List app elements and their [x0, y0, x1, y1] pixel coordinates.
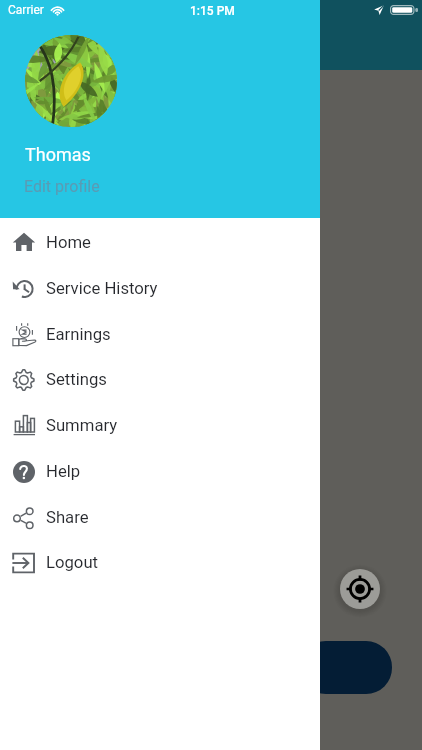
staticText: Share [46, 508, 89, 528]
button[interactable]: Help [0, 449, 320, 495]
button[interactable]: Home [0, 220, 320, 266]
staticText: Logout [46, 553, 99, 573]
staticText: Home [46, 233, 91, 253]
button[interactable]: My location [340, 569, 380, 609]
staticText: Help [46, 462, 81, 482]
staticText: 1:15 PM [190, 4, 235, 18]
button[interactable]: Summary [0, 403, 320, 449]
button[interactable]: Go online [300, 641, 392, 694]
button[interactable]: Settings [0, 357, 320, 403]
staticText: Settings [46, 370, 107, 390]
staticText: Carrier [8, 3, 44, 17]
button[interactable]: Logout [0, 540, 320, 586]
button[interactable]: Service History [0, 266, 320, 312]
staticText: Service History [46, 279, 158, 299]
staticText: Summary [46, 416, 118, 436]
button[interactable]: Edit profile [24, 177, 100, 196]
button[interactable]: Earnings [0, 312, 320, 358]
staticText: Earnings [46, 325, 111, 345]
staticText: Thomas [25, 144, 91, 165]
button[interactable]: Share [0, 495, 320, 541]
